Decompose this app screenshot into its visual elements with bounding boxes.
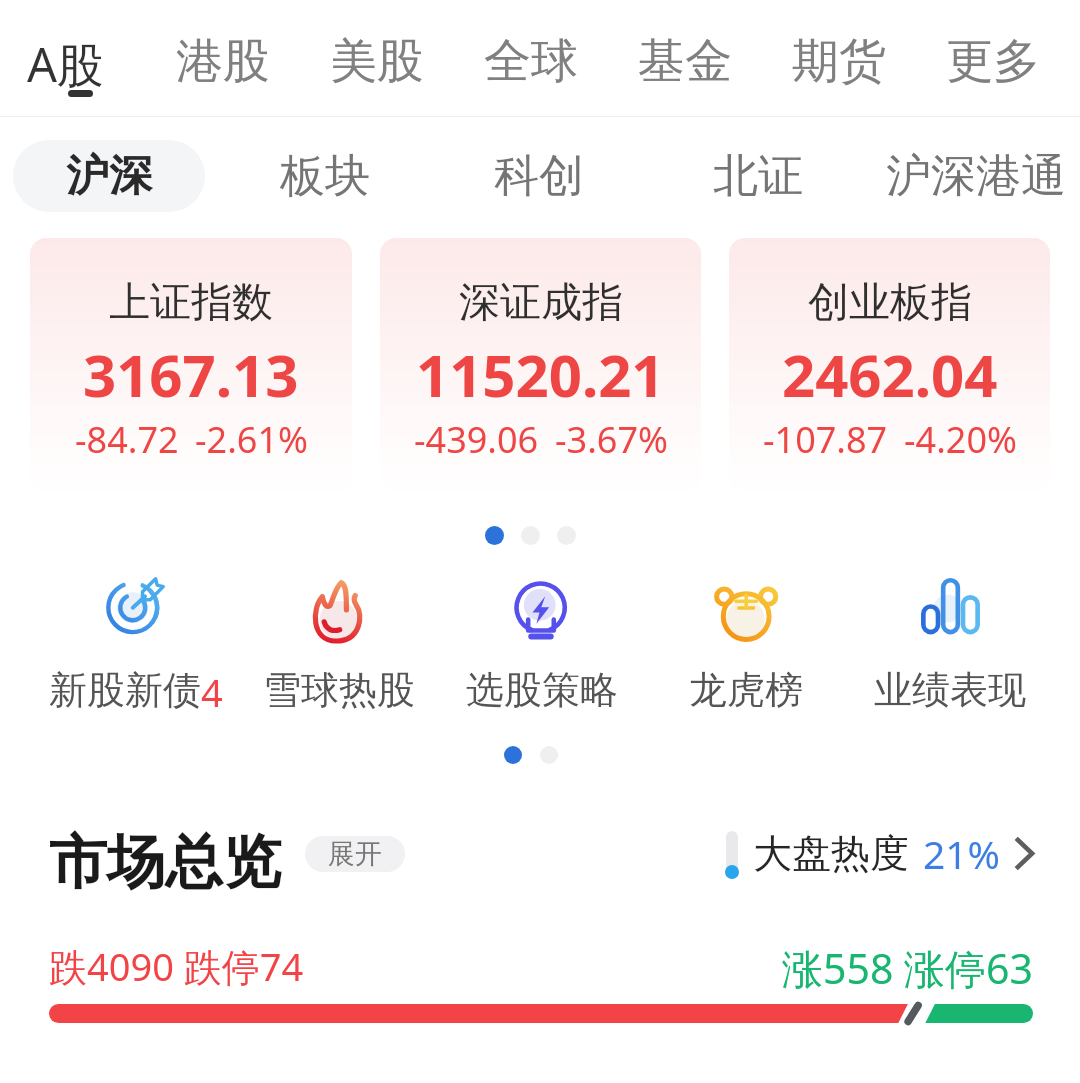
button[interactable]: 创业板指: [729, 238, 1050, 491]
staticText: 3167.13: [83, 335, 299, 414]
button[interactable]: 基金: [608, 32, 762, 103]
staticText: 板块: [280, 148, 370, 205]
staticText: 展开: [328, 837, 382, 871]
staticText: -107.87: [763, 415, 888, 464]
button[interactable]: 龙虎榜: [644, 572, 848, 714]
button[interactable]: 选股策略: [440, 572, 644, 714]
button[interactable]: 沪深: [13, 140, 205, 212]
staticText: -84.72: [75, 415, 179, 464]
button[interactable]: 北证: [706, 140, 810, 212]
staticText: 雪球热股: [263, 666, 415, 714]
button[interactable]: 美股: [300, 32, 454, 103]
staticText: 沪深: [66, 149, 152, 203]
staticText: -3.67%: [555, 415, 668, 464]
button[interactable]: 展开: [305, 836, 405, 872]
staticText: 21%: [923, 827, 1001, 880]
staticText: 跌4090 跌停74: [49, 940, 304, 992]
staticText: -4.20%: [904, 415, 1017, 464]
staticText: 创业板指: [808, 277, 972, 329]
button[interactable]: 期货: [762, 32, 916, 103]
staticText: 选股策略: [466, 666, 618, 714]
button[interactable]: 深证成指: [380, 238, 701, 491]
button[interactable]: 沪深港通: [876, 140, 1076, 212]
button[interactable]: 更多: [916, 32, 1070, 103]
staticText: 市场总览: [49, 826, 281, 899]
staticText: 美股: [330, 32, 424, 91]
staticText: 涨558 涨停63: [782, 940, 1033, 996]
button[interactable]: 上证指数: [30, 238, 352, 491]
staticText: 科创: [494, 148, 584, 205]
staticText: -2.61%: [195, 415, 308, 464]
staticText: A股: [27, 32, 105, 96]
staticText: 港股: [176, 32, 270, 91]
staticText: 全球: [484, 32, 578, 91]
button[interactable]: 新股新债: [34, 572, 237, 718]
staticText: 基金: [638, 32, 732, 91]
button[interactable]: 板块: [273, 140, 377, 212]
staticText: 深证成指: [459, 277, 623, 329]
staticText: 业绩表现: [874, 666, 1026, 714]
button[interactable]: 雪球热股: [237, 572, 440, 714]
staticText: 北证: [713, 148, 803, 205]
staticText: 更多: [946, 32, 1040, 91]
staticText: 11520.21: [416, 335, 665, 414]
button[interactable]: 业绩表现: [848, 572, 1052, 714]
staticText: 2462.04: [782, 335, 998, 414]
button[interactable]: 港股: [146, 32, 300, 103]
staticText: 期货: [792, 32, 886, 91]
staticText: -439.06: [414, 415, 539, 464]
staticText: 沪深港通: [886, 148, 1066, 205]
button[interactable]: 全球: [454, 32, 608, 103]
staticText: 龙虎榜: [689, 666, 803, 714]
staticText: 新股新债: [49, 666, 201, 714]
button[interactable]: A股: [0, 32, 143, 103]
button[interactable]: 大盘热度: [725, 827, 1034, 880]
staticText: 4: [201, 666, 223, 718]
staticText: 上证指数: [109, 277, 273, 329]
staticText: 大盘热度: [753, 829, 909, 878]
button[interactable]: 科创: [487, 140, 591, 212]
